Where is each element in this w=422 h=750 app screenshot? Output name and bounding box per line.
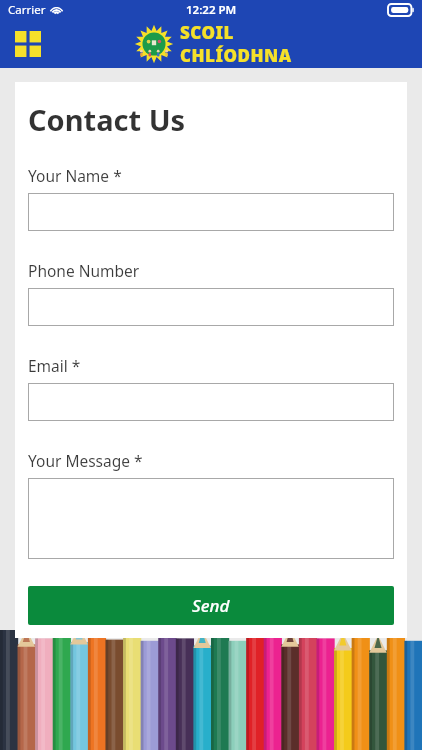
staticText: Email * [28,355,81,376]
button[interactable] [28,288,394,326]
button[interactable]: Menu [8,24,48,64]
button[interactable] [28,478,394,559]
staticText: Phone Number [28,260,140,281]
staticText: Carrier [8,2,46,18]
staticText: 12:22 PM [186,2,237,18]
button[interactable]: Send [28,586,394,625]
button[interactable] [28,383,394,421]
staticText: CHLÍODHNA [180,44,292,67]
staticText: SCOIL [180,21,234,44]
staticText: Your Name * [28,165,122,186]
staticText: Send [192,594,230,617]
staticText: Contact Us [28,100,186,139]
staticText: Your Message * [28,450,143,471]
button[interactable] [28,193,394,231]
